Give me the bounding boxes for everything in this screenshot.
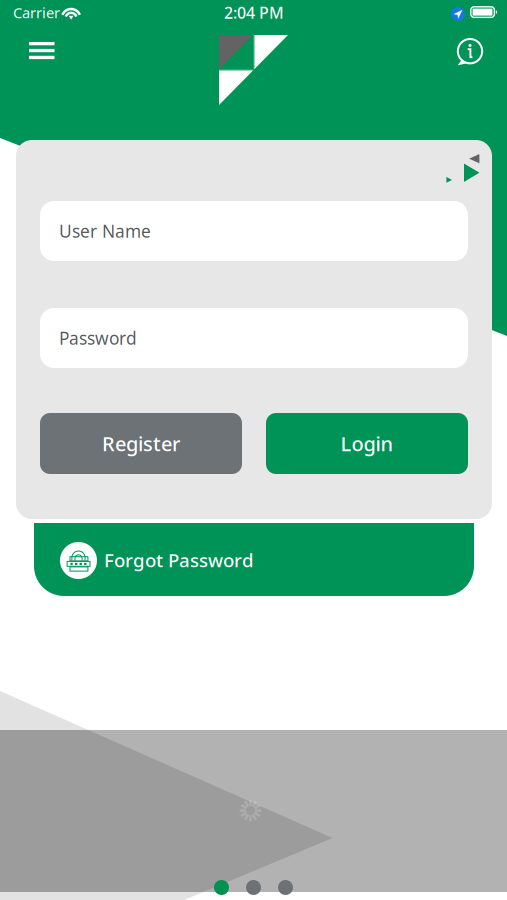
- button[interactable]: Login: [266, 413, 468, 474]
- staticText: Login: [340, 430, 393, 457]
- button[interactable]: Menu: [16, 26, 68, 76]
- staticText: Register: [102, 430, 180, 457]
- staticText: 2:04 PM: [224, 2, 284, 23]
- staticText: User Name: [59, 219, 151, 242]
- button[interactable]: Forgot Password: [34, 523, 474, 596]
- staticText: Forgot Password: [104, 548, 254, 572]
- button[interactable]: Info: [444, 26, 494, 78]
- staticText: Password: [59, 326, 137, 349]
- staticText: Carrier: [13, 3, 60, 22]
- button[interactable]: Register: [40, 413, 242, 474]
